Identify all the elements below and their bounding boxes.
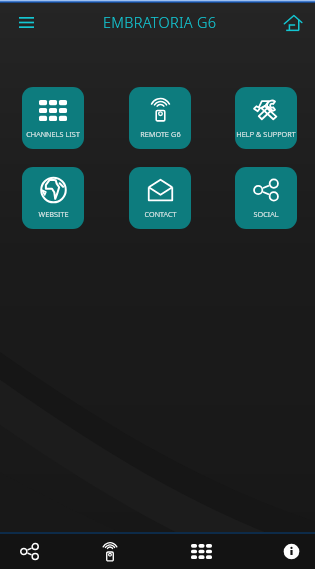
staticText: HELP & SUPPORT [236, 129, 296, 139]
button[interactable]: HELP & SUPPORT [235, 87, 297, 149]
button[interactable]: WEBSITE [22, 167, 84, 229]
button[interactable]: Remote [96, 534, 123, 569]
staticText: REMOTE G6 [140, 129, 181, 139]
button[interactable]: REMOTE G6 [129, 87, 191, 149]
button[interactable]: Share [16, 534, 43, 569]
button[interactable]: CHANNELS LIST [22, 87, 84, 149]
staticText: CHANNELS LIST [26, 129, 80, 139]
staticText: EMBRATORIA G6 [103, 12, 217, 32]
staticText: CONTACT [144, 209, 177, 219]
button[interactable]: Info [278, 534, 305, 569]
button[interactable]: SOCIAL [235, 167, 297, 229]
button[interactable]: Menu [12, 8, 40, 36]
button[interactable]: Home [279, 9, 307, 37]
button[interactable]: CONTACT [129, 167, 191, 229]
staticText: WEBSITE [38, 209, 69, 219]
button[interactable]: Channels [188, 534, 215, 569]
staticText: SOCIAL [253, 209, 279, 219]
